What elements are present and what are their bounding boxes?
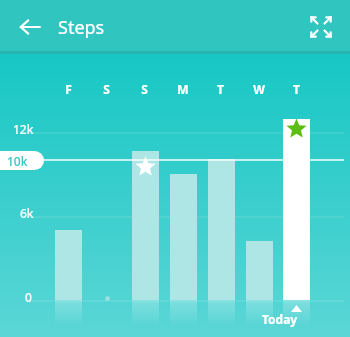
staticText: 0 [25, 289, 32, 305]
staticText: 12k [13, 121, 34, 137]
staticText: W [253, 81, 265, 97]
button[interactable]: Back [10, 7, 50, 47]
staticText: 10k [7, 153, 28, 169]
staticText: 6k [20, 205, 34, 221]
staticText: S [141, 81, 148, 97]
button[interactable]: 10k [0, 151, 44, 170]
staticText: M [177, 81, 189, 97]
staticText: T [217, 81, 224, 97]
staticText: F [65, 81, 72, 97]
button[interactable]: Expand [300, 6, 342, 48]
staticText: Steps [58, 15, 105, 40]
staticText: Today [262, 311, 298, 327]
staticText: T [293, 81, 300, 97]
button[interactable]: Today [262, 311, 298, 327]
staticText: S [103, 81, 110, 97]
